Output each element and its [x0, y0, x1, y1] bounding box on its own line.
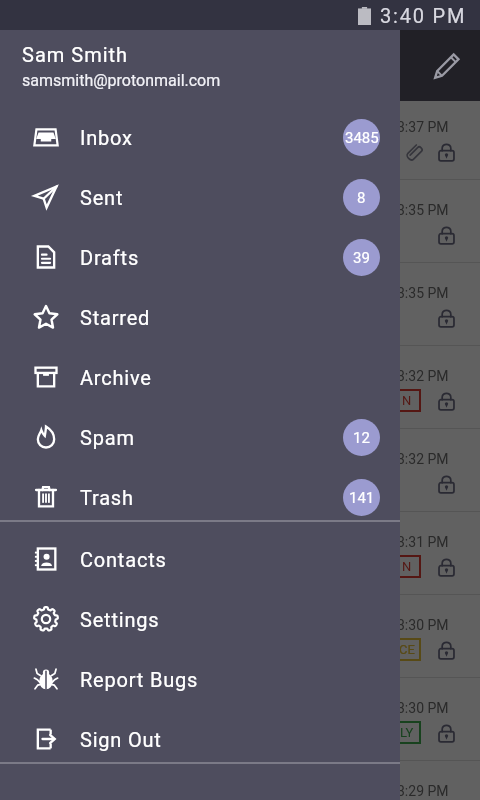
staticText: 3485: [345, 129, 379, 147]
button[interactable]: 3:30 PM: [0, 678, 480, 761]
staticText: Sam Smith: [22, 43, 129, 66]
button[interactable]: Starred: [0, 287, 400, 347]
staticText: 3:30 PM: [397, 700, 449, 716]
button[interactable]: 3:31 PM: [0, 512, 480, 595]
button[interactable]: 3:37 PM: [0, 97, 480, 180]
button[interactable]: Trash: [0, 467, 400, 527]
staticText: LY: [400, 725, 414, 740]
button[interactable]: Inbox: [0, 107, 400, 167]
button[interactable]: 3:30 PM: [0, 595, 480, 678]
button[interactable]: Sign Out: [0, 709, 400, 769]
staticText: 141: [349, 489, 375, 507]
staticText: samsmith@protonmail.com: [22, 71, 221, 90]
button[interactable]: Compose: [400, 30, 480, 101]
staticText: 3:31 PM: [397, 534, 449, 550]
button[interactable]: Spam: [0, 407, 400, 467]
button[interactable]: 3:29 PM: [0, 761, 480, 800]
staticText: 3:32 PM: [397, 451, 449, 467]
staticText: Sign Out: [80, 728, 162, 751]
staticText: 12: [353, 429, 370, 447]
button[interactable]: Report Bugs: [0, 649, 400, 709]
staticText: Report Bugs: [80, 668, 199, 691]
staticText: 8: [357, 189, 366, 207]
staticText: 3:29 PM: [397, 783, 449, 799]
staticText: Settings: [80, 608, 160, 631]
staticText: Drafts: [80, 246, 140, 269]
staticText: CE: [399, 642, 415, 657]
staticText: 3:40 PM: [380, 4, 467, 27]
staticText: 39: [353, 249, 370, 267]
button[interactable]: 3:32 PM: [0, 346, 480, 429]
button[interactable]: Settings: [0, 589, 400, 649]
staticText: N: [402, 393, 412, 408]
staticText: 3:37 PM: [397, 119, 449, 135]
button[interactable]: 3:35 PM: [0, 180, 480, 263]
button[interactable]: Sam Smith: [0, 30, 400, 107]
staticText: Spam: [80, 426, 135, 449]
staticText: 3:35 PM: [397, 202, 449, 218]
button[interactable]: 3:32 PM: [0, 429, 480, 512]
button[interactable]: Archive: [0, 347, 400, 407]
button[interactable]: 3:35 PM: [0, 263, 480, 346]
staticText: Starred: [80, 306, 151, 329]
staticText: 3:30 PM: [397, 617, 449, 633]
button[interactable]: Drafts: [0, 227, 400, 287]
staticText: Contacts: [80, 548, 167, 571]
staticText: Inbox: [80, 126, 133, 149]
staticText: 3:32 PM: [397, 368, 449, 384]
staticText: 3:35 PM: [397, 285, 449, 301]
button[interactable]: Sent: [0, 167, 400, 227]
staticText: Trash: [80, 486, 134, 509]
staticText: Archive: [80, 366, 152, 389]
button[interactable]: Contacts: [0, 529, 400, 589]
staticText: Sent: [80, 186, 124, 209]
staticText: N: [402, 559, 412, 574]
